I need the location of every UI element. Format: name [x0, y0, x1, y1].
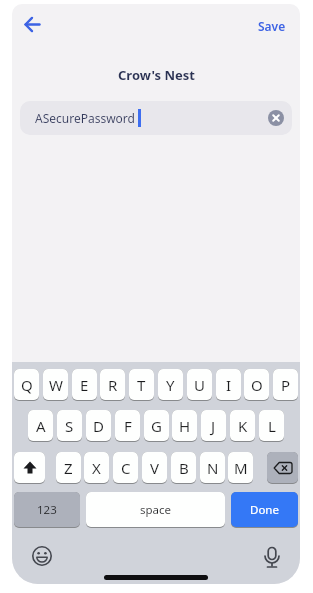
button[interactable]: S: [57, 410, 82, 442]
staticText: G: [151, 416, 162, 436]
staticText: space: [140, 502, 172, 518]
button[interactable]: Save: [252, 16, 292, 36]
staticText: D: [93, 416, 104, 436]
staticText: B: [179, 458, 189, 478]
button[interactable]: X: [84, 452, 109, 484]
staticText: C: [121, 458, 131, 478]
button[interactable]: Y: [158, 369, 183, 401]
button[interactable]: Done: [231, 492, 298, 528]
button[interactable]: I: [216, 369, 241, 401]
button[interactable]: A: [28, 410, 53, 442]
button[interactable]: C: [113, 452, 138, 484]
button[interactable]: T: [129, 369, 154, 401]
button[interactable]: M: [228, 452, 253, 484]
button[interactable]: O: [244, 369, 269, 401]
button[interactable]: D: [86, 410, 111, 442]
button[interactable]: 123: [14, 492, 80, 528]
button[interactable]: [18, 14, 48, 38]
staticText: H: [179, 416, 191, 436]
staticText: ASecurePassword: [35, 110, 135, 126]
button[interactable]: U: [187, 369, 212, 401]
button[interactable]: K: [230, 410, 255, 442]
button[interactable]: Z: [56, 452, 81, 484]
staticText: S: [65, 416, 74, 436]
staticText: Save: [258, 18, 286, 34]
staticText: O: [251, 375, 263, 395]
button[interactable]: H: [172, 410, 197, 442]
button[interactable]: R: [100, 369, 125, 401]
staticText: R: [108, 375, 118, 395]
staticText: P: [281, 375, 291, 395]
button[interactable]: B: [171, 452, 196, 484]
button[interactable]: [267, 452, 298, 484]
button[interactable]: [14, 452, 45, 484]
staticText: X: [92, 458, 101, 478]
button[interactable]: N: [200, 452, 225, 484]
staticText: Done: [250, 502, 279, 518]
staticText: Q: [21, 375, 33, 395]
staticText: 123: [37, 502, 57, 518]
button[interactable]: space: [86, 492, 225, 528]
staticText: F: [124, 416, 132, 436]
staticText: K: [238, 416, 248, 436]
button[interactable]: L: [259, 410, 284, 442]
staticText: V: [150, 458, 160, 478]
staticText: W: [49, 375, 63, 395]
staticText: J: [211, 416, 216, 436]
button[interactable]: V: [142, 452, 167, 484]
button[interactable]: ASecurePassword: [20, 101, 292, 135]
staticText: Z: [64, 458, 73, 478]
staticText: I: [226, 375, 232, 395]
staticText: M: [234, 458, 248, 478]
button[interactable]: [268, 110, 284, 126]
button[interactable]: G: [144, 410, 169, 442]
staticText: U: [194, 375, 205, 395]
button[interactable]: W: [43, 369, 68, 401]
button[interactable]: E: [72, 369, 97, 401]
button[interactable]: [31, 545, 53, 567]
staticText: E: [80, 375, 89, 395]
button[interactable]: P: [273, 369, 298, 401]
staticText: Crow's Nest: [118, 66, 195, 84]
staticText: L: [268, 416, 276, 436]
button[interactable]: Q: [14, 369, 39, 401]
staticText: N: [207, 458, 219, 478]
staticText: A: [36, 416, 46, 436]
staticText: Y: [166, 375, 175, 395]
button[interactable]: F: [115, 410, 140, 442]
staticText: T: [137, 375, 146, 395]
button[interactable]: [261, 546, 283, 570]
button[interactable]: J: [201, 410, 226, 442]
